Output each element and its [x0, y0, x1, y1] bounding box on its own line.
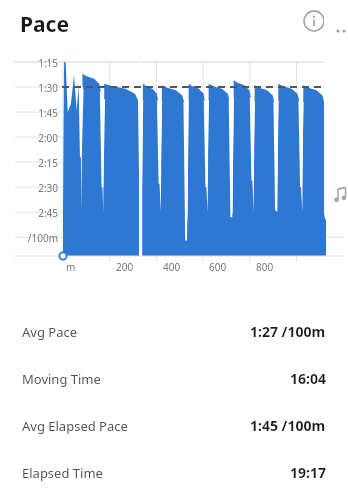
- staticText: m: [66, 260, 96, 274]
- button[interactable]: Moving Time: [0, 355, 348, 402]
- staticText: 800: [256, 260, 286, 274]
- button[interactable]: Avg Elapsed Pace: [0, 402, 348, 449]
- staticText: 1:45 /100m: [250, 416, 326, 435]
- staticText: 1:45: [10, 106, 58, 120]
- staticText: Elapsed Time: [22, 464, 103, 482]
- staticText: /100m: [10, 231, 58, 245]
- staticText: 200: [116, 260, 146, 274]
- staticText: 19:17: [290, 463, 326, 482]
- staticText: 1:27 /100m: [250, 322, 326, 341]
- button[interactable]: Avg Pace: [0, 308, 348, 355]
- button[interactable]: Music: [324, 0, 348, 232]
- staticText: 1:15: [10, 56, 58, 70]
- button[interactable]: Elapsed Time: [0, 449, 348, 496]
- staticText: 1:30: [10, 81, 58, 95]
- staticText: 2:30: [10, 181, 58, 195]
- staticText: 400: [163, 260, 193, 274]
- staticText: 2:00: [10, 131, 58, 145]
- staticText: 2:15: [10, 156, 58, 170]
- staticText: Pace: [20, 10, 69, 39]
- staticText: Moving Time: [22, 370, 101, 388]
- staticText: 600: [209, 260, 239, 274]
- staticText: Avg Pace: [22, 323, 78, 341]
- staticText: 2:45: [10, 206, 58, 220]
- staticText: Avg Elapsed Pace: [22, 417, 128, 435]
- staticText: 16:04: [290, 369, 326, 388]
- button[interactable]: Info: [300, 7, 328, 35]
